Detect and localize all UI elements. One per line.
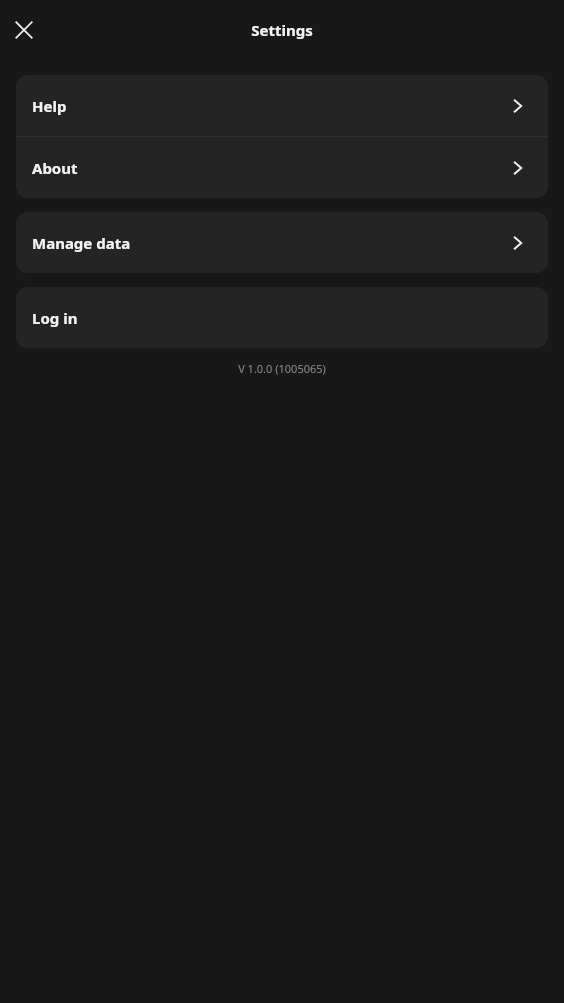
staticText: Manage data xyxy=(32,233,131,253)
button[interactable]: Help xyxy=(16,75,548,136)
staticText: Settings xyxy=(251,20,313,40)
button[interactable]: About xyxy=(16,137,548,198)
button[interactable]: Log in xyxy=(16,287,548,348)
staticText: Log in xyxy=(32,308,78,328)
button[interactable]: Manage data xyxy=(16,212,548,273)
button[interactable]: Close xyxy=(8,14,40,46)
staticText: About xyxy=(32,158,78,178)
staticText: V 1.0.0 (1005065) xyxy=(0,361,564,376)
staticText: Help xyxy=(32,96,67,116)
